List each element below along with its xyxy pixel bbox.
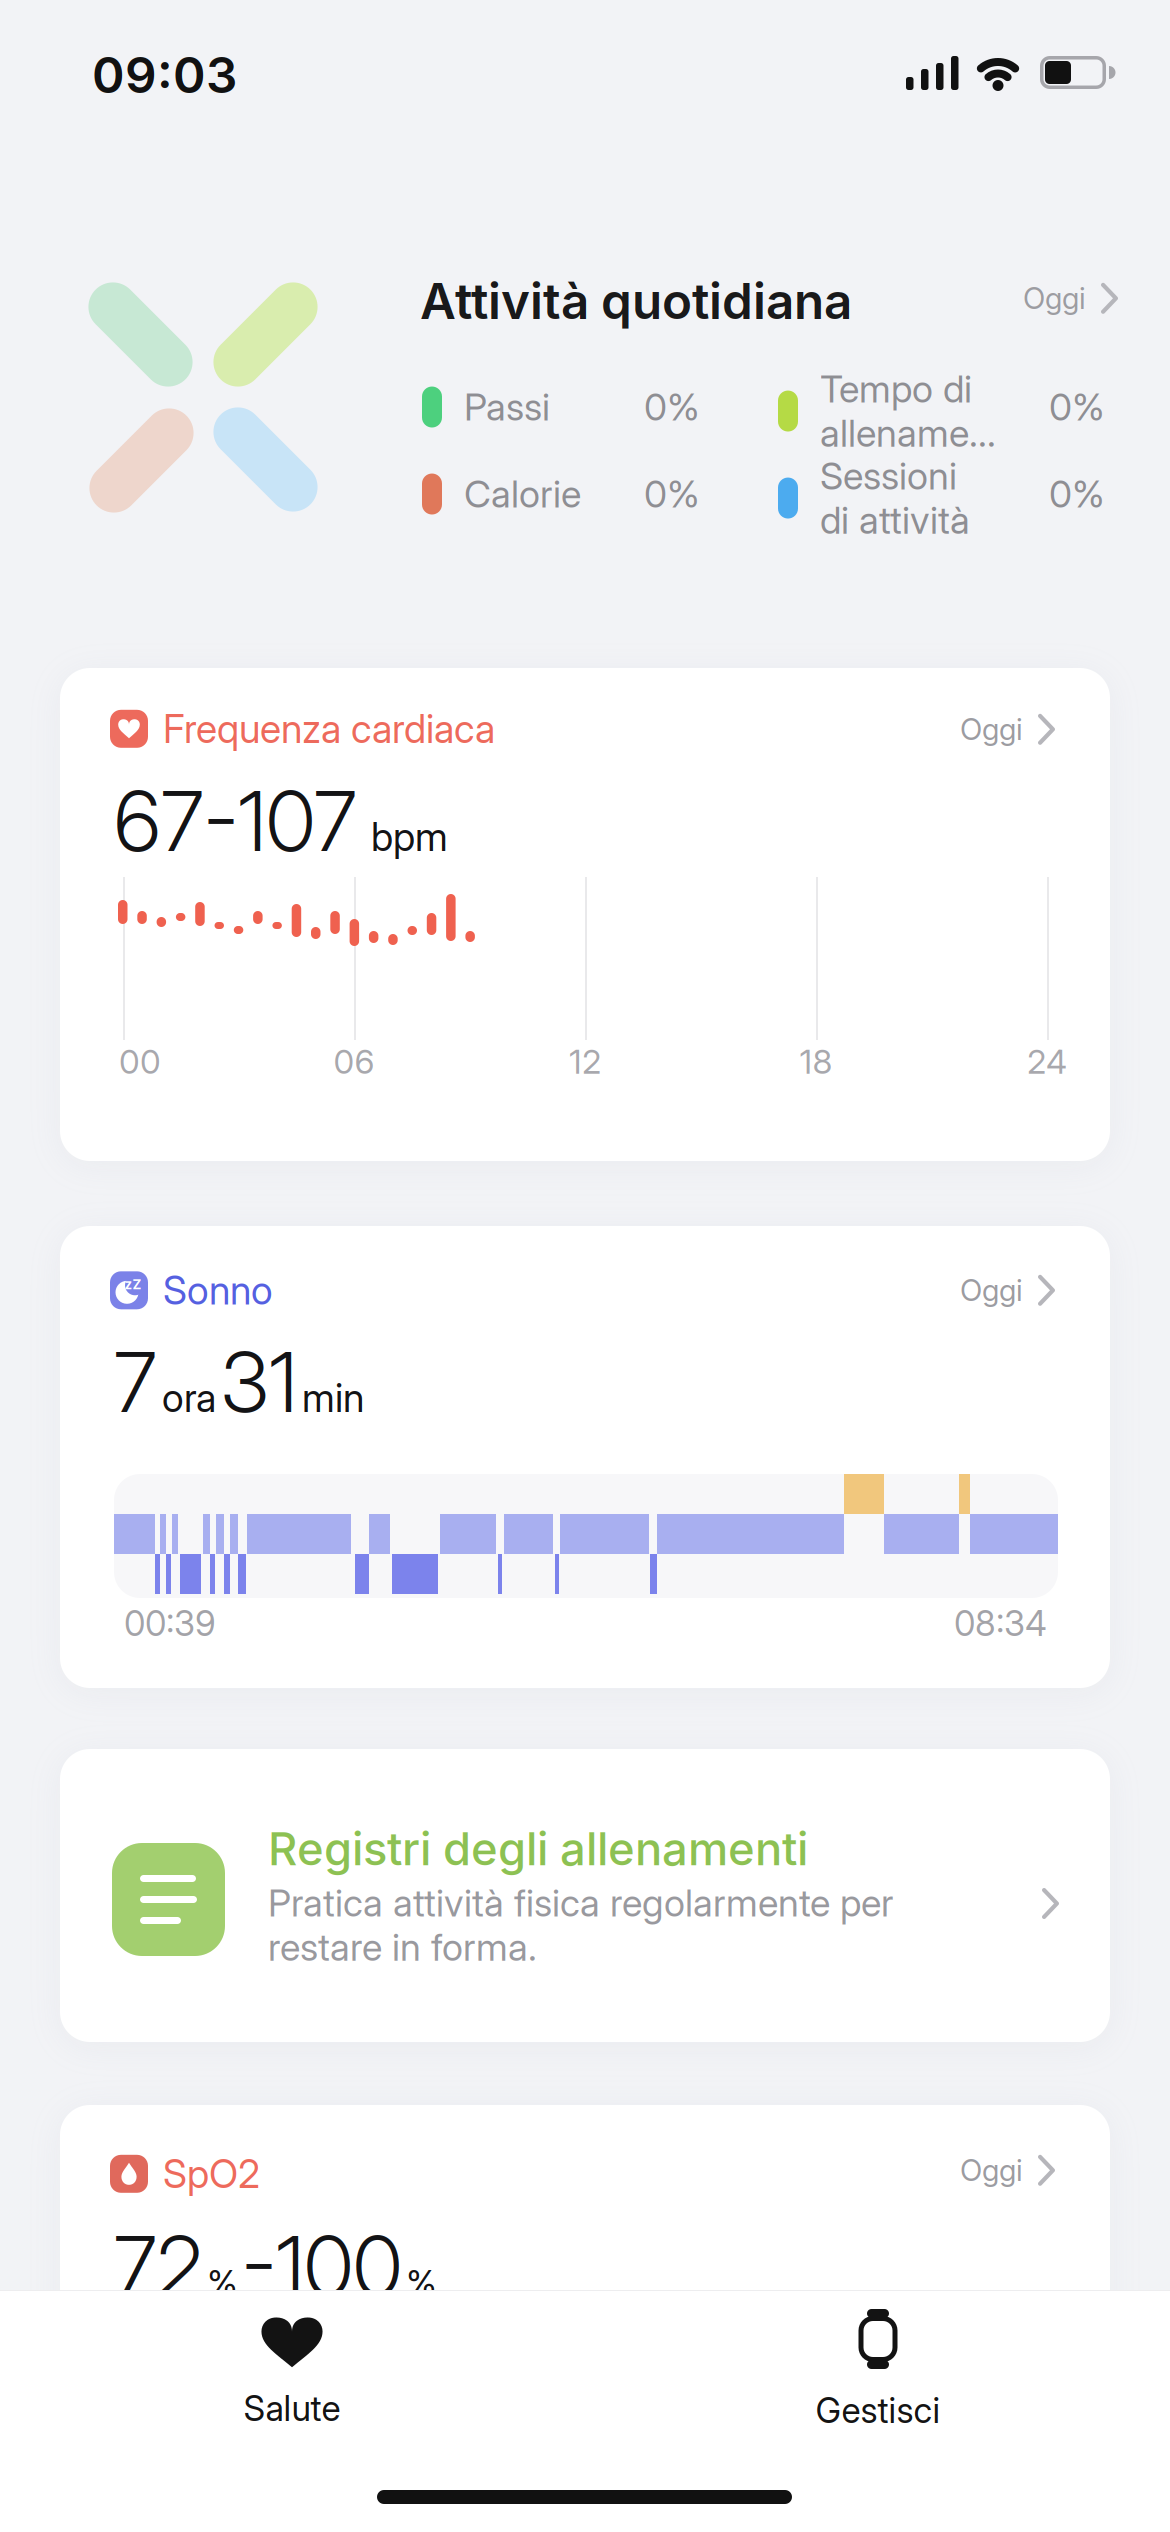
staticText: Gestisci: [815, 2390, 940, 2431]
staticText: 0%: [1049, 385, 1105, 429]
staticText: Pratica attività fisica regolarmente per…: [268, 1881, 893, 1969]
staticText: 18: [799, 1042, 832, 1081]
staticText: SpO2: [163, 2151, 260, 2197]
button[interactable]: Oggi: [855, 2153, 1055, 2188]
staticText: %: [207, 2263, 238, 2304]
button[interactable]: Salute: [132, 2315, 452, 2429]
button[interactable]: Oggi: [855, 1273, 1055, 1308]
staticText: min: [302, 1375, 364, 1421]
staticText: 06: [333, 1042, 374, 1081]
staticText: Oggi: [1023, 281, 1086, 316]
staticText: 67-107: [114, 771, 357, 871]
staticText: zZ: [124, 1276, 141, 1292]
staticText: 0%: [1049, 472, 1105, 516]
staticText: -100: [242, 2216, 402, 2316]
button[interactable]: SpO2: [110, 2151, 260, 2197]
button[interactable]: Frequenza cardiaca: [110, 706, 495, 752]
staticText: Oggi: [960, 2153, 1023, 2188]
staticText: Attività quotidiana: [420, 272, 852, 330]
staticText: Frequenza cardiaca: [163, 706, 495, 752]
staticText: Sessioni di attività: [820, 454, 970, 542]
staticText: Sonno: [163, 1267, 273, 1313]
staticText: ora: [162, 1375, 216, 1421]
button[interactable]: zZ: [110, 1267, 273, 1313]
staticText: Oggi: [960, 1273, 1023, 1308]
staticText: 24: [1027, 1042, 1067, 1081]
staticText: 31: [221, 1332, 297, 1432]
staticText: 0%: [644, 385, 700, 429]
staticText: 00:39: [124, 1603, 216, 1644]
button[interactable]: Registri degli allenamenti: [60, 1749, 1110, 2042]
staticText: Passi: [464, 385, 550, 429]
staticText: bpm: [371, 814, 448, 860]
staticText: Tempo di allename...: [820, 367, 996, 455]
staticText: %: [406, 2263, 437, 2304]
staticText: 7: [114, 1332, 157, 1432]
staticText: Calorie: [464, 472, 581, 516]
staticText: 72: [114, 2216, 203, 2316]
staticText: 0%: [644, 472, 700, 516]
button[interactable]: Gestisci: [718, 2309, 1038, 2431]
staticText: 00: [119, 1042, 161, 1081]
staticText: 08:34: [954, 1603, 1047, 1644]
staticText: Oggi: [960, 712, 1023, 747]
staticText: 12: [569, 1042, 601, 1081]
staticText: Salute: [243, 2388, 340, 2429]
staticText: 09:03: [92, 46, 237, 104]
button[interactable]: Oggi: [855, 712, 1055, 747]
button[interactable]: Oggi: [898, 281, 1118, 316]
staticText: Registri degli allenamenti: [268, 1822, 808, 1875]
